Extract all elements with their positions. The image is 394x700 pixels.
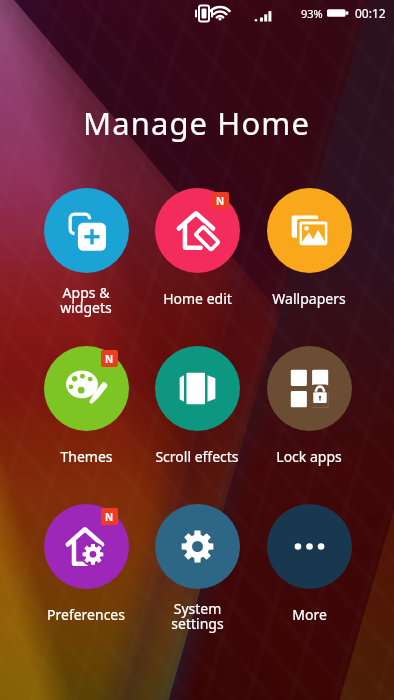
staticText: Home edit [163, 289, 232, 308]
button[interactable]: Home edit [141, 188, 253, 308]
staticText: N [105, 352, 114, 366]
button[interactable]: Apps and widgets [30, 188, 142, 317]
button[interactable]: Scroll effects [141, 346, 253, 466]
button[interactable]: Preferences [30, 504, 142, 624]
staticText: N [105, 510, 114, 524]
button[interactable]: System settings [141, 504, 253, 633]
button[interactable]: Wallpapers [253, 188, 365, 308]
staticText: Preferences [47, 605, 125, 624]
staticText: Lock apps [276, 447, 342, 466]
staticText: Wallpapers [272, 289, 346, 308]
button[interactable]: Themes [30, 346, 142, 466]
staticText: 93% [301, 6, 323, 21]
staticText: Scroll effects [155, 447, 239, 466]
staticText: More [292, 605, 327, 624]
staticText: System settings [171, 599, 224, 633]
staticText: Manage Home [83, 102, 310, 144]
button[interactable]: More [253, 504, 365, 624]
staticText: N [216, 194, 225, 208]
staticText: Apps & widgets [60, 283, 112, 317]
button[interactable]: Lock apps [253, 346, 365, 466]
staticText: Themes [60, 447, 113, 466]
staticText: 00:12 [355, 5, 386, 21]
